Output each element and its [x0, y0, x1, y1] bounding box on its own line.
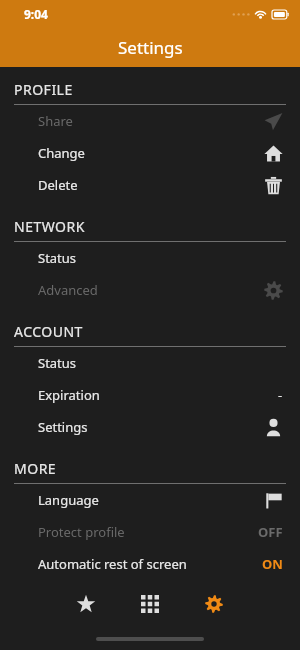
staticText: Settings — [38, 418, 88, 436]
staticText: Automatic rest of screen — [38, 555, 187, 573]
button[interactable]: Automatic rest of screen — [0, 548, 300, 580]
button[interactable]: Change — [0, 137, 300, 169]
button[interactable]: Status — [0, 347, 300, 379]
staticText: Change — [38, 144, 85, 162]
staticText: Status — [38, 354, 77, 372]
staticText: OFF — [258, 523, 283, 541]
button[interactable]: Favorites — [63, 581, 109, 627]
button[interactable]: Status — [0, 242, 300, 274]
staticText: ON — [262, 555, 283, 573]
button[interactable]: Apps — [127, 581, 173, 627]
staticText: PROFILE — [14, 80, 73, 99]
staticText: Delete — [38, 176, 78, 194]
staticText: Advanced — [38, 281, 98, 299]
staticText: Share — [38, 112, 73, 130]
staticText: ACCOUNT — [14, 322, 83, 341]
button[interactable]: Settings — [191, 581, 237, 627]
button[interactable]: Language — [0, 484, 300, 516]
button[interactable]: Delete — [0, 169, 300, 201]
button[interactable]: Advanced — [0, 274, 300, 306]
staticText: Language — [38, 491, 99, 509]
staticText: Expiration — [38, 386, 100, 404]
staticText: NETWORK — [14, 217, 85, 236]
staticText: 9:04 — [24, 6, 48, 22]
button[interactable]: Settings — [0, 411, 300, 443]
staticText: - — [278, 386, 283, 404]
staticText: MORE — [14, 459, 57, 478]
button[interactable]: Share — [0, 105, 300, 137]
staticText: Protect profile — [38, 523, 125, 541]
button[interactable]: Expiration — [0, 379, 300, 411]
staticText: Status — [38, 249, 77, 267]
staticText: Settings — [118, 36, 183, 59]
button[interactable]: Protect profile — [0, 516, 300, 548]
